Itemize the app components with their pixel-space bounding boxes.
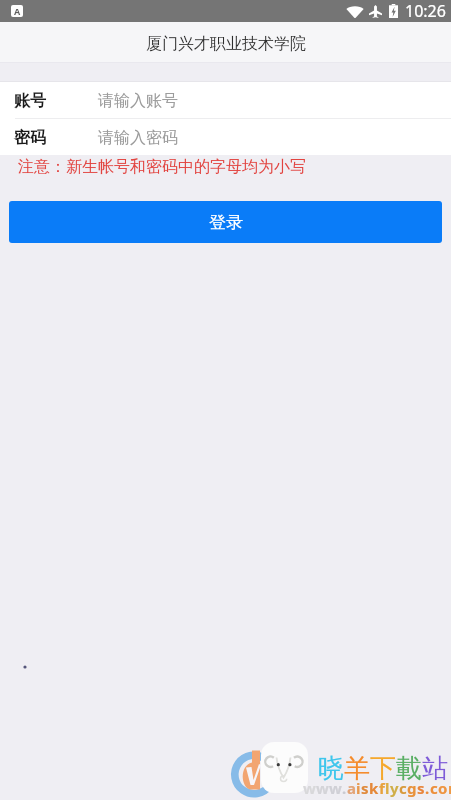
staticText: m (448, 778, 451, 798)
staticText: 載 (396, 752, 422, 785)
staticText: s (361, 778, 369, 798)
button[interactable]: 请输入密码 (0, 119, 451, 155)
staticText: c (399, 778, 407, 798)
staticText: l (385, 778, 390, 798)
staticText: 晓 (318, 752, 344, 785)
staticText: 羊 (344, 752, 370, 785)
staticText: a (347, 778, 356, 798)
staticText: y (390, 778, 399, 798)
staticText: w (316, 778, 329, 798)
staticText: 厦门兴才职业技术学院 (146, 34, 306, 54)
staticText: . (342, 778, 347, 798)
staticText: w (329, 778, 342, 798)
staticText: f (379, 778, 385, 798)
staticText: 请输入密码 (98, 128, 178, 148)
staticText: A (14, 5, 21, 17)
button[interactable]: 请输入账号 (0, 82, 451, 118)
staticText: k (369, 778, 379, 798)
staticText: i (356, 778, 361, 798)
staticText: 登录 (209, 212, 243, 233)
staticText: c (430, 778, 438, 798)
button[interactable]: 登录 (9, 201, 442, 243)
staticText: 注意：新生帐号和密码中的字母均为小写 (18, 157, 306, 177)
staticText: s (417, 778, 425, 798)
staticText: 站 (422, 752, 448, 785)
staticText: 密码 (14, 128, 46, 148)
staticText: 请输入账号 (98, 91, 178, 111)
staticText: 10:26 (405, 0, 446, 22)
staticText: 下 (370, 752, 396, 785)
staticText: w (303, 778, 316, 798)
staticText: 账号 (14, 91, 46, 111)
staticText: g (407, 778, 417, 798)
staticText: . (425, 778, 430, 798)
staticText: o (438, 778, 448, 798)
